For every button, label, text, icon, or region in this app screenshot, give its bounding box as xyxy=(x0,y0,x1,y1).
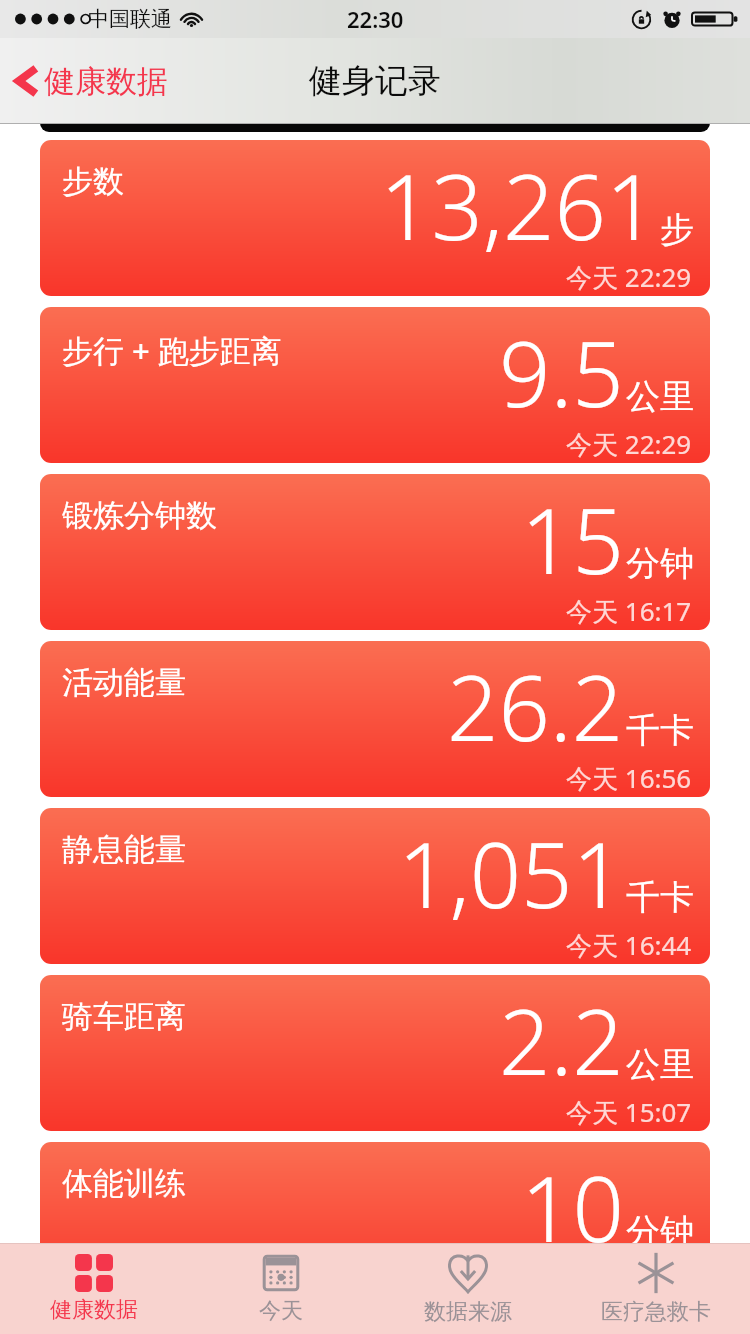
staticText: 分钟 xyxy=(626,1210,694,1253)
staticText: 静息能量 xyxy=(62,830,186,869)
button[interactable]: 健康数据 xyxy=(0,50,182,112)
button[interactable]: 静息能量 xyxy=(40,808,710,964)
button[interactable]: 体能训练 xyxy=(40,1142,710,1298)
staticText: 健康数据 xyxy=(50,1296,138,1324)
staticText: 2.2 xyxy=(499,979,624,1102)
staticText: 今天 16:56 xyxy=(566,760,692,793)
button[interactable]: 步数 xyxy=(40,140,710,296)
staticText: 10 xyxy=(521,1146,624,1269)
button[interactable]: 今天 xyxy=(187,1247,374,1331)
staticText: 1,051 xyxy=(398,812,624,935)
button[interactable]: 数据来源 xyxy=(374,1246,562,1332)
staticText: 健康数据 xyxy=(44,62,168,101)
staticText: 中国联通 xyxy=(88,6,172,32)
staticText: 医疗急救卡 xyxy=(601,1298,711,1326)
staticText: 今天 15:07 xyxy=(566,1094,692,1127)
other: 健康数据 xyxy=(75,1254,113,1292)
staticText: 13,261 xyxy=(380,144,658,267)
staticText: 15 xyxy=(521,478,624,601)
staticText: 千卡 xyxy=(626,876,694,919)
button[interactable]: 健康数据 xyxy=(0,1248,187,1330)
staticText: 今天 xyxy=(259,1297,303,1325)
staticText: 步行 + 跑步距离 xyxy=(62,329,282,371)
staticText: 健身记录 xyxy=(309,60,441,102)
other: 今天 xyxy=(261,1253,301,1293)
staticText: 体能训练 xyxy=(62,1164,186,1203)
button[interactable]: 步行 + 跑步距离 xyxy=(40,307,710,463)
button[interactable]: 锻炼分钟数 xyxy=(40,474,710,630)
staticText: 今天 22:29 xyxy=(566,259,692,292)
button[interactable]: 活动能量 xyxy=(40,641,710,797)
staticText: 公里 xyxy=(626,1043,694,1086)
staticText: 9.5 xyxy=(499,311,624,434)
staticText: 锻炼分钟数 xyxy=(62,496,217,535)
staticText: 今天 16:44 xyxy=(566,927,692,960)
staticText: 千卡 xyxy=(626,709,694,752)
button[interactable]: 医疗急救卡 xyxy=(562,1246,750,1332)
staticText: 步 xyxy=(660,208,694,251)
button[interactable]: 骑车距离 xyxy=(40,975,710,1131)
staticText: 数据来源 xyxy=(424,1298,512,1326)
staticText: 26.2 xyxy=(447,645,624,768)
staticText: 分钟 xyxy=(626,542,694,585)
staticText: 活动能量 xyxy=(62,663,186,702)
other: 医疗急救卡 xyxy=(635,1252,677,1294)
other: 数据来源 xyxy=(447,1252,489,1294)
staticText: 今天 22:29 xyxy=(566,426,692,459)
staticText: 今天 16:17 xyxy=(566,593,692,626)
staticText: 22:30 xyxy=(347,4,404,34)
staticText: 骑车距离 xyxy=(62,997,186,1036)
staticText: 公里 xyxy=(626,375,694,418)
staticText: 步数 xyxy=(62,162,124,201)
